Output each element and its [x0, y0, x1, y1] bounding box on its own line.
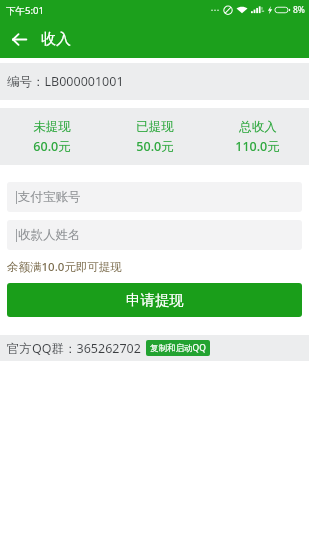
button[interactable]: Back	[0, 20, 38, 58]
button[interactable]: 申请提现	[7, 283, 302, 317]
staticText: 110.0元	[235, 138, 280, 155]
button[interactable]: 未提现	[0, 119, 103, 155]
staticText: 总收入	[239, 119, 277, 135]
button[interactable]: 复制和启动QQ	[146, 340, 210, 356]
button[interactable]: 已提现	[103, 119, 206, 155]
staticText: 8%	[293, 4, 305, 16]
staticText: 未提现	[33, 119, 71, 135]
staticText: 申请提现	[126, 291, 184, 309]
button[interactable]: 支付宝账号	[7, 182, 302, 212]
staticText: 50.0元	[136, 138, 174, 155]
staticText: 官方QQ群：365262702	[7, 340, 141, 357]
button[interactable]: 收款人姓名	[7, 220, 302, 250]
staticText: 复制和启动QQ	[150, 342, 206, 354]
staticText: 已提现	[136, 119, 174, 135]
staticText: 下午5:01	[6, 4, 44, 17]
staticText: 余额满10.0元即可提现	[7, 259, 122, 275]
staticText: 60.0元	[33, 138, 71, 155]
staticText: 支付宝账号	[18, 189, 81, 205]
staticText: 收款人姓名	[18, 227, 81, 243]
staticText: 编号：LB000001001	[7, 73, 124, 90]
button[interactable]: 总收入	[206, 119, 309, 155]
staticText: 收入	[41, 30, 71, 49]
